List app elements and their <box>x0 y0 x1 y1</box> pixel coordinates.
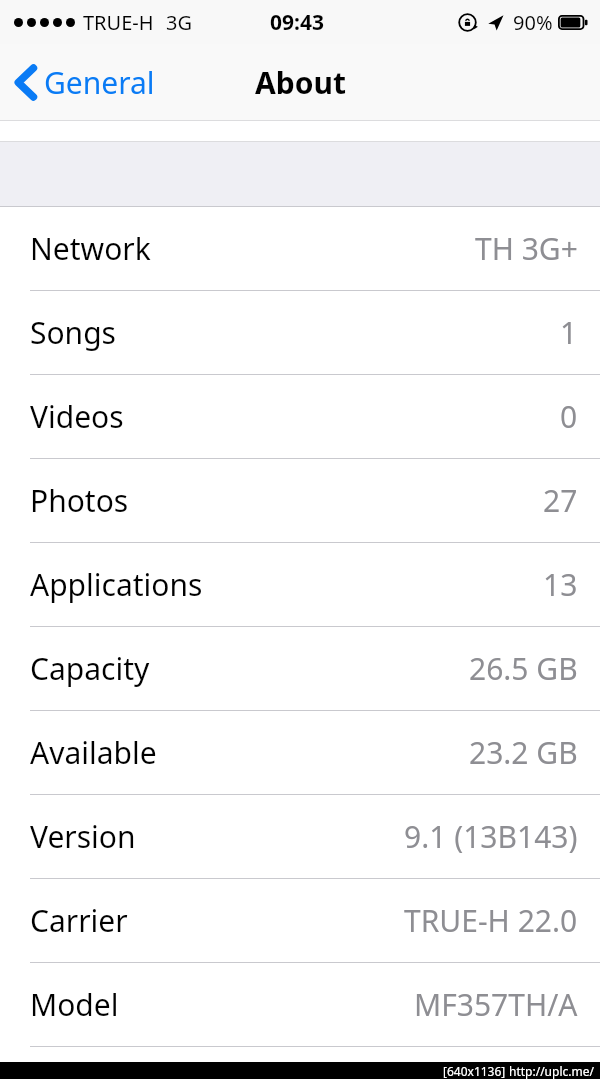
staticText: TRUE-H 22.0 <box>404 900 578 941</box>
staticText: TH 3G+ <box>475 228 578 269</box>
staticText: http://uplc.me/ <box>509 1063 594 1079</box>
staticText: About <box>255 62 346 103</box>
staticText: 09:43 <box>270 8 324 37</box>
button[interactable]: Model <box>0 963 600 1046</box>
staticText: Applications <box>30 564 203 605</box>
staticText: 1 <box>560 312 578 353</box>
button[interactable]: Photos <box>0 459 600 542</box>
staticText: 27 <box>543 480 578 521</box>
button[interactable]: Songs <box>0 291 600 374</box>
staticText: Videos <box>30 396 124 437</box>
staticText: 26.5 GB <box>469 648 578 689</box>
staticText: Capacity <box>30 648 150 689</box>
staticText: General <box>44 62 155 103</box>
staticText: 0 <box>560 396 578 437</box>
staticText: 13 <box>543 564 578 605</box>
staticText: Songs <box>30 312 116 353</box>
staticText: 3G <box>166 9 192 36</box>
button[interactable]: Available <box>0 711 600 794</box>
staticText: Network <box>30 228 151 269</box>
staticText: TRUE-H <box>83 9 154 36</box>
button[interactable]: Carrier <box>0 879 600 962</box>
staticText: Version <box>30 816 136 857</box>
staticText: Photos <box>30 480 129 521</box>
staticText: Carrier <box>30 900 128 941</box>
staticText: MF357TH/A <box>414 984 578 1025</box>
button[interactable]: Version <box>0 795 600 878</box>
button[interactable]: Videos <box>0 375 600 458</box>
staticText: 9.1 (13B143) <box>404 816 578 857</box>
staticText: [640x1136] <box>443 1063 506 1079</box>
button[interactable]: General <box>0 54 171 111</box>
staticText: 90% <box>513 9 553 36</box>
staticText: Model <box>30 984 119 1025</box>
button[interactable]: Applications <box>0 543 600 626</box>
staticText: Available <box>30 732 157 773</box>
button[interactable]: Network <box>0 207 600 290</box>
staticText: 23.2 GB <box>469 732 578 773</box>
button[interactable]: Capacity <box>0 627 600 710</box>
